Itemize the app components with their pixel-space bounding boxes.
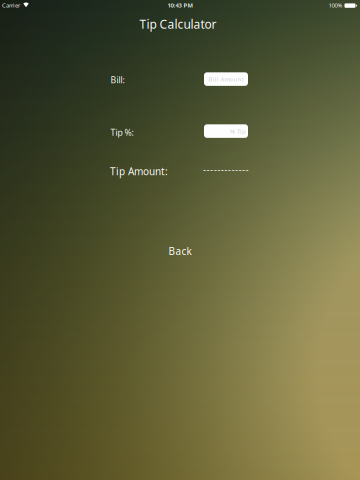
staticText: 100% <box>328 1 342 9</box>
button[interactable]: Back <box>152 242 208 260</box>
button[interactable]: Bill Amount <box>204 72 248 86</box>
staticText: Back <box>168 244 191 258</box>
staticText: 10:43 PM <box>167 1 192 9</box>
button[interactable]: % Tip <box>204 124 248 138</box>
staticText: Tip %: <box>110 126 133 138</box>
staticText: Carrier <box>2 1 20 9</box>
staticText: Bill: <box>110 74 124 86</box>
staticText: Bill Amount <box>208 75 243 83</box>
staticText: ------------- <box>203 162 249 176</box>
staticText: % Tip <box>230 127 246 135</box>
staticText: Tip Amount: <box>110 164 168 178</box>
staticText: Tip Calculator <box>139 16 216 32</box>
